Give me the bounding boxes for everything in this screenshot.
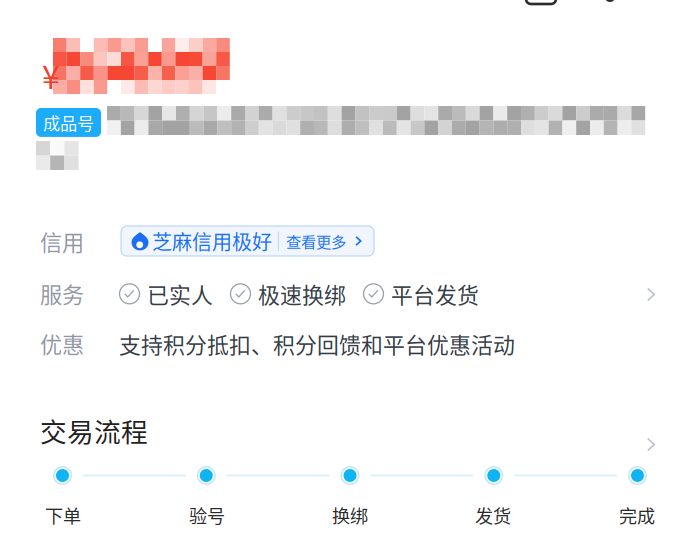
staticText: 发货 [475, 502, 511, 528]
staticText: 支持积分抵扣、积分回馈和平台优惠活动 [119, 328, 515, 360]
staticText: 换绑 [332, 502, 368, 528]
button[interactable]: 交易流程 [40, 411, 148, 450]
button[interactable]: 芝麻信用极好 [121, 226, 374, 256]
button[interactable]: Collect [526, 0, 556, 4]
staticText: 成品号 [43, 110, 94, 135]
staticText: 极速换绑 [258, 278, 346, 310]
staticText: 平台发货 [391, 278, 479, 310]
staticText: 查看更多 [286, 230, 346, 252]
button[interactable]: More [605, 0, 615, 2]
button[interactable]: 已实人 [119, 278, 479, 310]
staticText: 优惠 [40, 327, 84, 359]
staticText: 下单 [45, 502, 81, 528]
staticText: 服务 [40, 277, 84, 309]
staticText: 验号 [189, 502, 225, 528]
staticText: 芝麻信用极好 [152, 226, 272, 255]
staticText: ¥ [42, 52, 60, 98]
staticText: 信用 [40, 225, 84, 257]
staticText: 完成 [619, 502, 655, 528]
staticText: 交易流程 [40, 411, 148, 450]
staticText: 已实人 [147, 278, 213, 310]
